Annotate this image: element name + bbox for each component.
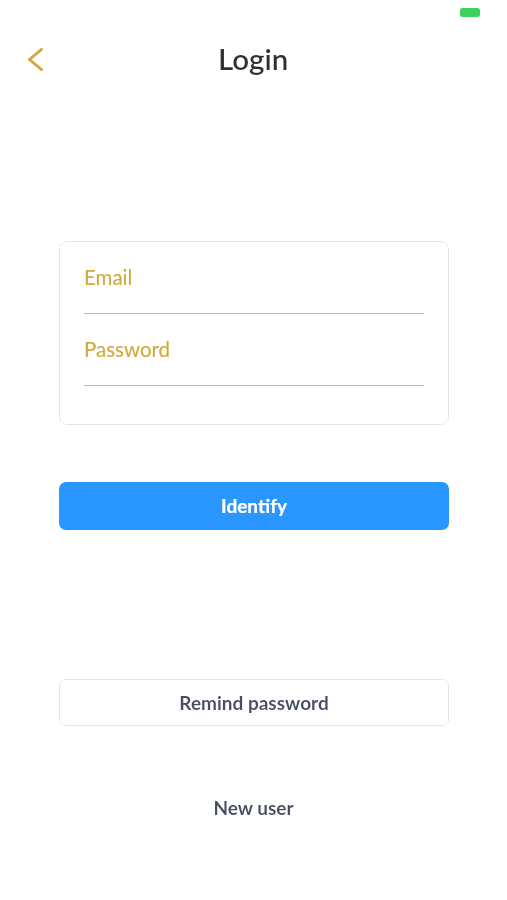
button[interactable]: Back <box>11 35 59 83</box>
button[interactable]: Remind password <box>59 679 449 726</box>
button[interactable]: Email <box>84 270 449 313</box>
staticText: Password <box>84 337 171 362</box>
button[interactable]: Identify <box>59 482 449 530</box>
staticText: Email <box>84 265 133 290</box>
staticText: Identify <box>221 494 287 517</box>
staticText: Remind password <box>179 691 329 714</box>
button[interactable]: Password <box>84 342 449 385</box>
button[interactable]: New user <box>0 786 507 828</box>
staticText: Login <box>218 41 289 76</box>
staticText: New user <box>213 796 294 819</box>
